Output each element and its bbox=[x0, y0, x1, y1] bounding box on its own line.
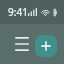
button[interactable]: Open navigation menu bbox=[6, 28, 38, 60]
staticText: Library bbox=[42, 35, 58, 54]
staticText: 9:41 bbox=[8, 5, 28, 19]
button[interactable]: Add bbox=[35, 35, 57, 57]
